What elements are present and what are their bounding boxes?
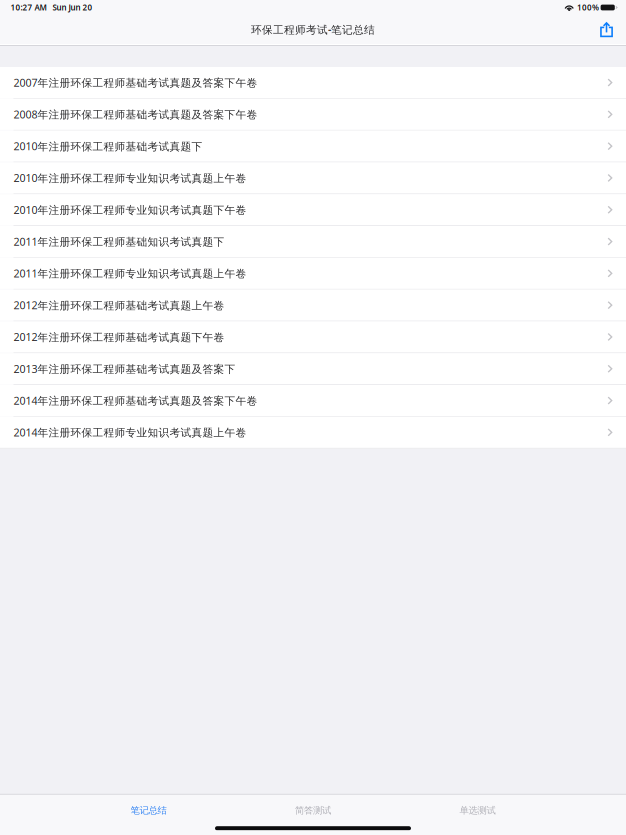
staticText: 环保工程师考试-笔记总结 xyxy=(251,22,375,37)
button[interactable]: 单选测试 xyxy=(395,797,560,823)
button[interactable]: 2008年注册环保工程师基础考试真题及答案下午卷 xyxy=(0,99,626,130)
button[interactable]: 2007年注册环保工程师基础考试真题及答案下午卷 xyxy=(0,67,626,98)
button[interactable]: 2011年注册环保工程师基础知识考试真题下 xyxy=(0,226,626,257)
button[interactable]: 2010年注册环保工程师专业知识考试真题下午卷 xyxy=(0,194,626,225)
button[interactable]: 2014年注册环保工程师基础考试真题及答案下午卷 xyxy=(0,385,626,416)
staticText: 2012年注册环保工程师基础考试真题上午卷 xyxy=(13,298,224,312)
staticText: 2014年注册环保工程师基础考试真题及答案下午卷 xyxy=(13,393,257,408)
button[interactable]: 2010年注册环保工程师基础考试真题下 xyxy=(0,131,626,162)
staticText: 2010年注册环保工程师专业知识考试真题下午卷 xyxy=(13,203,246,217)
staticText: 2013年注册环保工程师基础考试真题及答案下 xyxy=(13,362,235,376)
staticText: 单选测试 xyxy=(459,805,495,816)
button[interactable]: 简答测试 xyxy=(231,797,395,823)
button[interactable]: 2013年注册环保工程师基础考试真题及答案下 xyxy=(0,353,626,384)
staticText: 100% xyxy=(577,2,599,13)
staticText: 笔记总结 xyxy=(130,805,166,816)
staticText: 2010年注册环保工程师基础考试真题下 xyxy=(13,139,202,153)
staticText: 2012年注册环保工程师基础考试真题下午卷 xyxy=(13,330,224,344)
staticText: 10:27 AM Sun Jun 20 xyxy=(10,2,92,13)
button[interactable]: 2012年注册环保工程师基础考试真题上午卷 xyxy=(0,290,626,321)
staticText: 2011年注册环保工程师基础知识考试真题下 xyxy=(13,234,224,249)
staticText: 2011年注册环保工程师专业知识考试真题上午卷 xyxy=(13,266,246,280)
staticText: 2008年注册环保工程师基础考试真题及答案下午卷 xyxy=(13,107,257,121)
staticText: 2010年注册环保工程师专业知识考试真题上午卷 xyxy=(13,171,246,185)
staticText: 2014年注册环保工程师专业知识考试真题上午卷 xyxy=(13,425,246,439)
button[interactable]: 2010年注册环保工程师专业知识考试真题上午卷 xyxy=(0,162,626,193)
button[interactable]: 笔记总结 xyxy=(66,797,231,823)
button[interactable]: 2012年注册环保工程师基础考试真题下午卷 xyxy=(0,321,626,352)
button[interactable]: 2014年注册环保工程师专业知识考试真题上午卷 xyxy=(0,417,626,448)
button[interactable]: 2011年注册环保工程师专业知识考试真题上午卷 xyxy=(0,258,626,289)
staticText: 简答测试 xyxy=(295,805,331,816)
button[interactable]: Share xyxy=(595,19,618,40)
staticText: 2007年注册环保工程师基础考试真题及答案下午卷 xyxy=(13,75,257,90)
